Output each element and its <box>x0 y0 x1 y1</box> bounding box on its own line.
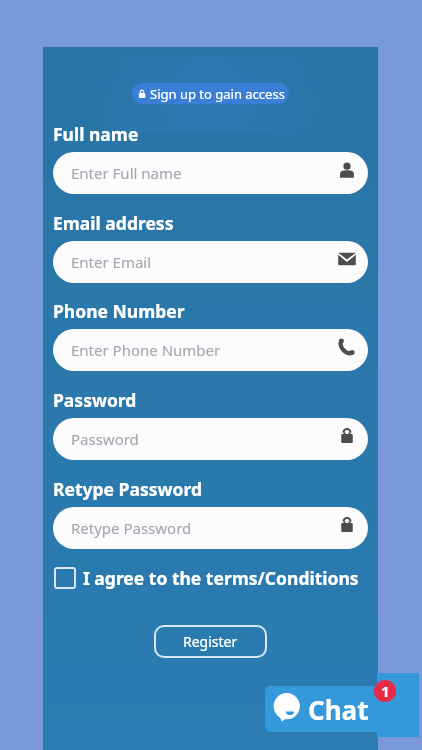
button[interactable]: Sign up to gain access <box>132 83 289 104</box>
staticText: Enter Phone Number <box>71 340 221 360</box>
staticText: Phone Number <box>53 299 185 323</box>
staticText: Full name <box>53 122 139 146</box>
staticText: Retype Password <box>71 518 192 538</box>
button[interactable]: Enter Phone Number <box>53 329 368 371</box>
staticText: Enter Full name <box>71 163 182 183</box>
button[interactable]: Chat <box>265 686 419 732</box>
staticText: Enter Email <box>71 252 152 272</box>
button[interactable]: Password <box>53 418 368 460</box>
button[interactable]: Retype Password <box>53 507 368 549</box>
staticText: Sign up to gain access <box>150 85 285 103</box>
staticText: Password <box>71 429 139 449</box>
staticText: Chat <box>308 692 369 727</box>
staticText: Password <box>53 388 137 412</box>
button[interactable]: Enter Full name <box>53 152 368 194</box>
button[interactable]: I agree to the terms/Conditions <box>54 566 359 590</box>
staticText: 1 <box>381 681 390 701</box>
staticText: Email address <box>53 211 174 235</box>
button[interactable]: Register <box>154 625 267 658</box>
other: 1 unread chat message <box>374 680 396 702</box>
staticText: Retype Password <box>53 477 202 501</box>
staticText: Register <box>183 632 238 651</box>
button[interactable]: Enter Email <box>53 241 368 283</box>
staticText: I agree to the terms/Conditions <box>83 566 359 590</box>
